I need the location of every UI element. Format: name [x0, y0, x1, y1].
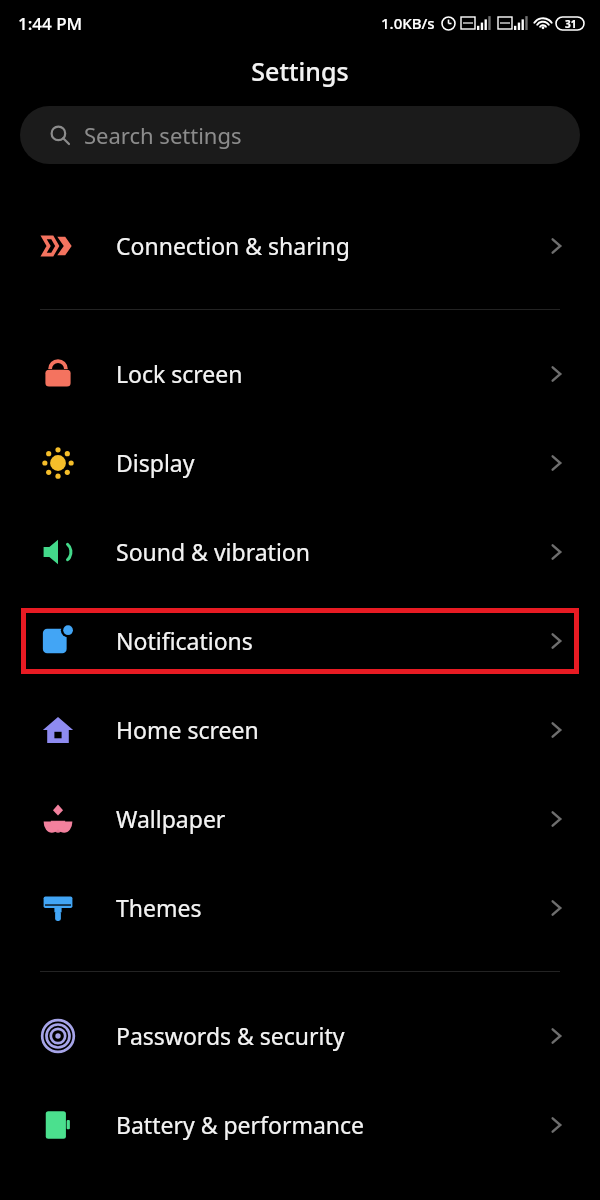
staticText: Passwords & security — [116, 1020, 544, 1051]
button[interactable]: Wallpaper — [0, 774, 600, 863]
staticText: Lock screen — [116, 358, 544, 389]
staticText: Display — [116, 447, 544, 478]
staticText: Wallpaper — [116, 803, 544, 834]
staticText: Sound & vibration — [116, 536, 544, 567]
staticText: 1.0KB/s — [381, 13, 435, 33]
staticText: Home screen — [116, 714, 544, 745]
staticText: Settings — [0, 54, 600, 88]
button[interactable]: Themes — [0, 863, 600, 952]
button[interactable]: Battery & performance — [0, 1080, 600, 1169]
button[interactable]: Connection & sharing — [0, 201, 600, 290]
staticText: Search settings — [84, 120, 242, 150]
staticText: 1:44 PM — [18, 12, 83, 35]
staticText: Notifications — [116, 625, 544, 656]
button[interactable]: Sound & vibration — [0, 507, 600, 596]
staticText: Connection & sharing — [116, 230, 544, 261]
button[interactable]: Lock screen — [0, 329, 600, 418]
button[interactable]: Passwords & security — [0, 991, 600, 1080]
staticText: 31 — [565, 17, 577, 31]
staticText: Battery & performance — [116, 1109, 544, 1140]
staticText: Themes — [116, 892, 544, 923]
button[interactable]: Home screen — [0, 685, 600, 774]
button[interactable]: Search settings — [20, 106, 580, 164]
button[interactable]: Notifications — [0, 596, 600, 685]
button[interactable]: Display — [0, 418, 600, 507]
